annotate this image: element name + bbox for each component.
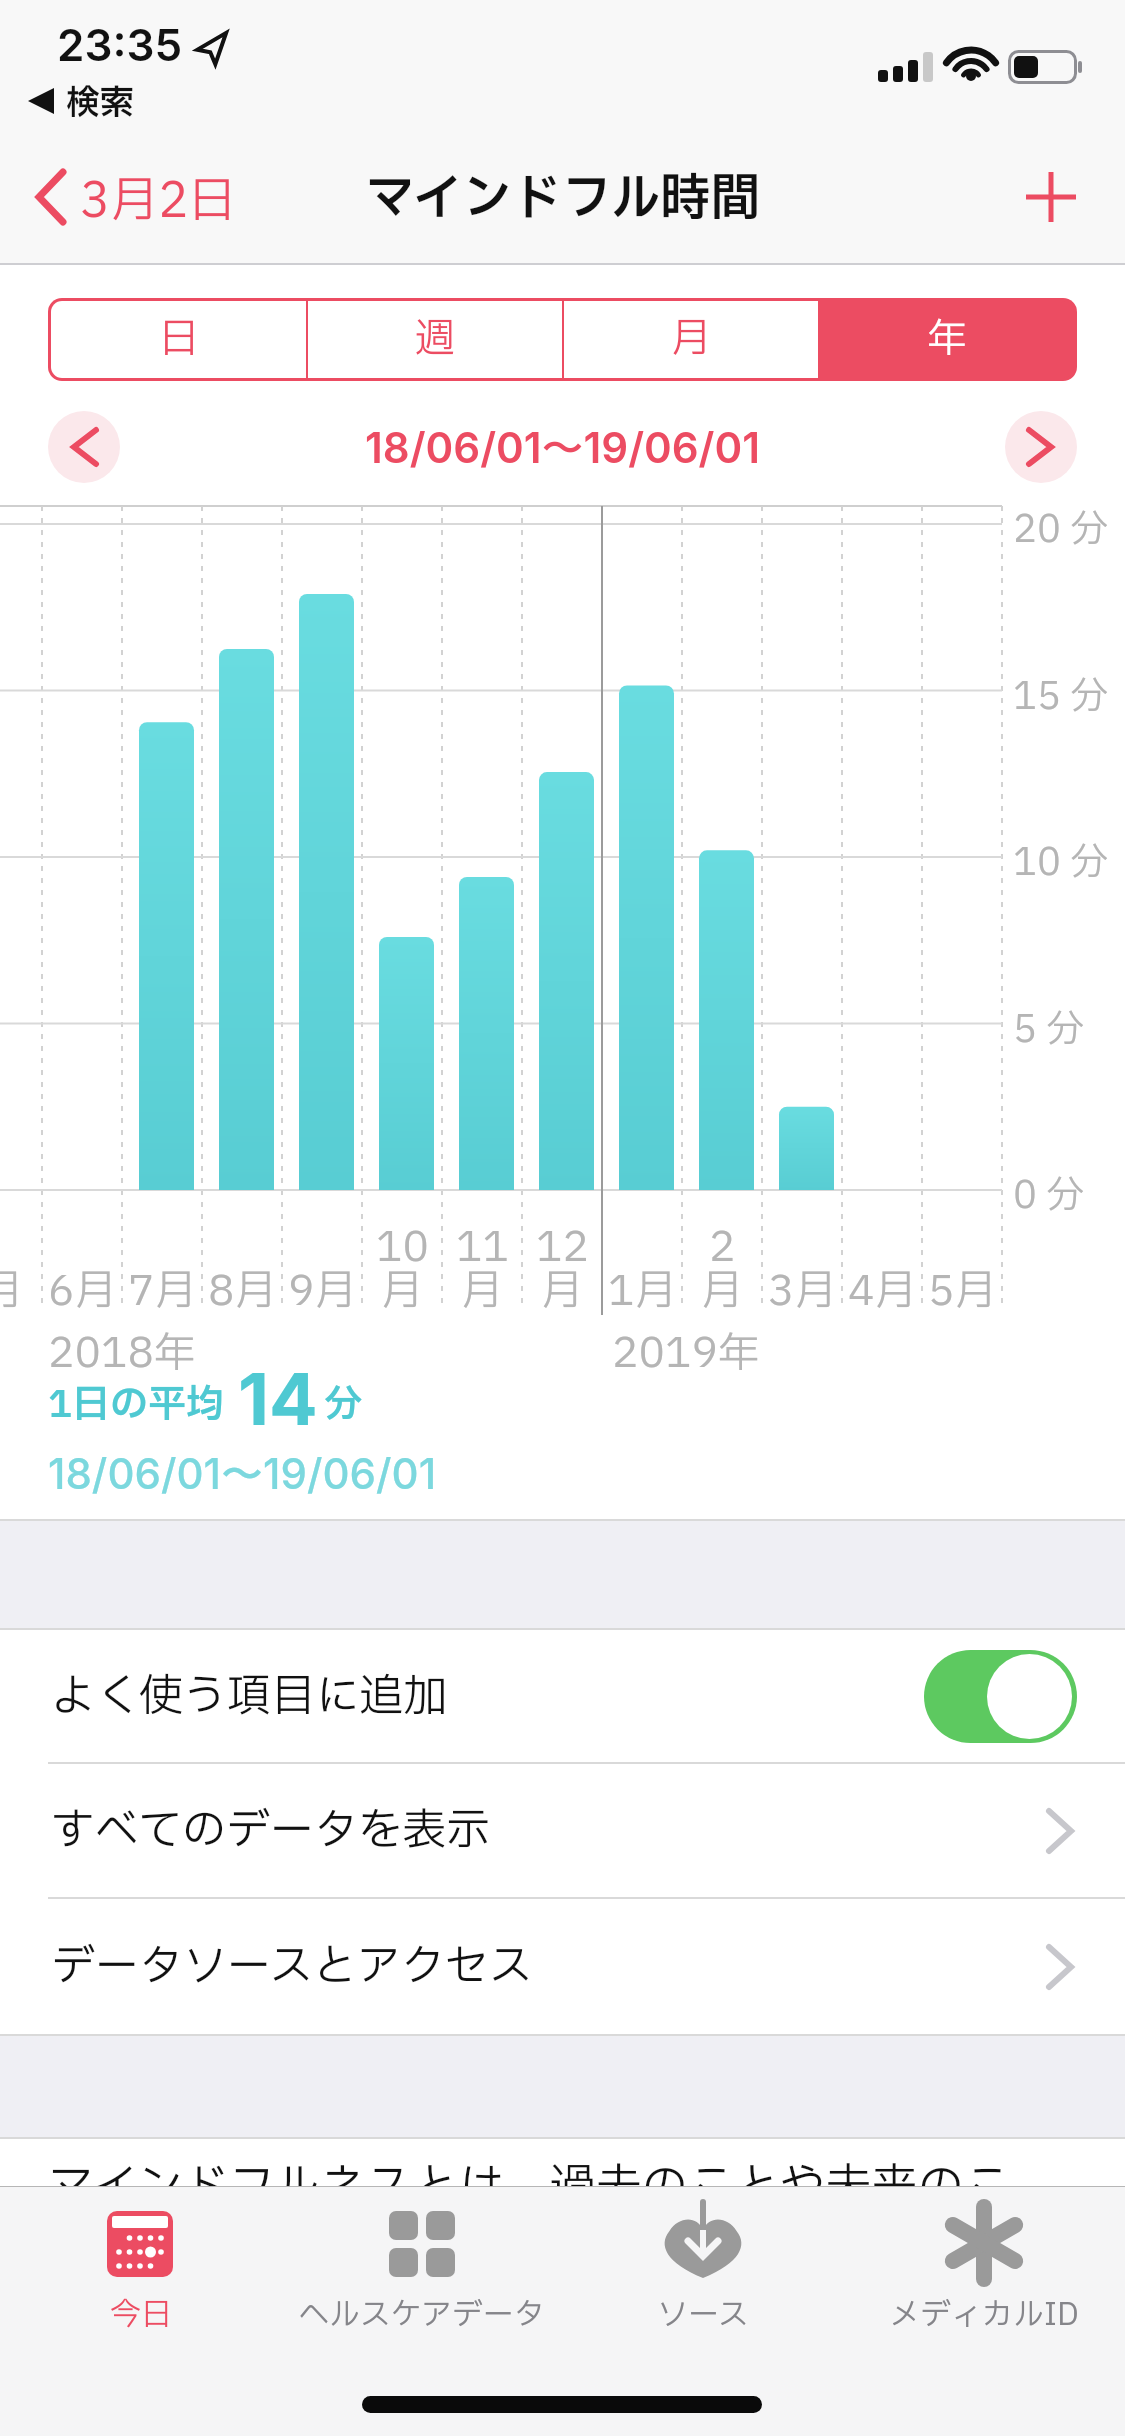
staticText: 分: [324, 1377, 363, 1434]
button[interactable]: データソースとアクセス: [0, 1899, 1125, 2034]
staticText: 10: [376, 1216, 429, 1266]
staticText: 2019年: [612, 1322, 760, 1385]
staticText: 15 分: [1013, 669, 1109, 726]
button[interactable]: [48, 411, 120, 483]
staticText: 月: [381, 1260, 424, 1310]
button[interactable]: 3月2日: [80, 166, 237, 238]
staticText: 月: [0, 1260, 24, 1310]
staticText: すべてのデータを表示: [51, 1798, 491, 1864]
staticText: ソース: [657, 2292, 749, 2338]
button[interactable]: 月: [564, 301, 818, 378]
staticText: 14: [238, 1355, 318, 1442]
staticText: 0 分: [1013, 1168, 1085, 1225]
staticText: メディカルID: [889, 2292, 1079, 2338]
staticText: 10 分: [1013, 835, 1109, 892]
button[interactable]: 年: [820, 301, 1074, 378]
staticText: 4月: [848, 1260, 917, 1310]
staticText: 11: [456, 1216, 509, 1266]
staticText: 週: [415, 310, 455, 370]
button[interactable]: [562, 2190, 843, 2350]
staticText: 今日: [110, 2292, 172, 2338]
staticText: 月: [671, 310, 711, 370]
staticText: 月: [461, 1260, 504, 1310]
staticText: 8月: [208, 1260, 277, 1310]
staticText: マインドフルネスとは、過去のことや未来のこ: [48, 2153, 1010, 2186]
staticText: データソースとアクセス: [51, 1934, 533, 2000]
staticText: 12: [536, 1216, 589, 1266]
button[interactable]: [33, 168, 67, 226]
staticText: 20 分: [1013, 502, 1109, 559]
staticText: 23:35: [57, 18, 183, 71]
button[interactable]: [281, 2190, 562, 2350]
staticText: 2018年: [48, 1322, 196, 1385]
staticText: 2: [709, 1216, 736, 1266]
staticText: 1月: [608, 1260, 677, 1310]
staticText: 検索: [66, 78, 134, 129]
staticText: よく使う項目に追加: [51, 1664, 447, 1730]
button[interactable]: 日: [51, 301, 306, 378]
button[interactable]: [843, 2190, 1125, 2350]
staticText: 3月: [768, 1260, 837, 1310]
staticText: 月: [541, 1260, 584, 1310]
button[interactable]: [1005, 411, 1077, 483]
staticText: マインドフル時間: [365, 162, 761, 228]
button[interactable]: [1026, 172, 1076, 222]
staticText: 年: [927, 310, 967, 370]
button[interactable]: [0, 2190, 281, 2350]
button[interactable]: すべてのデータを表示: [0, 1764, 1125, 1898]
staticText: 5 分: [1013, 1002, 1085, 1059]
button[interactable]: 週: [308, 301, 562, 378]
button[interactable]: よく使う項目に追加: [0, 1630, 1125, 1763]
staticText: 7月: [128, 1260, 197, 1310]
staticText: 18/06/01〜19/06/01: [365, 422, 761, 475]
staticText: 9月: [288, 1260, 357, 1310]
staticText: ヘルスケアデータ: [298, 2292, 545, 2338]
staticText: 1日の平均: [48, 1377, 224, 1434]
staticText: 18/06/01〜19/06/01: [48, 1448, 437, 1501]
staticText: 6月: [48, 1260, 117, 1310]
staticText: 日: [159, 310, 199, 370]
staticText: 月: [701, 1260, 744, 1310]
staticText: 5月: [928, 1260, 997, 1310]
